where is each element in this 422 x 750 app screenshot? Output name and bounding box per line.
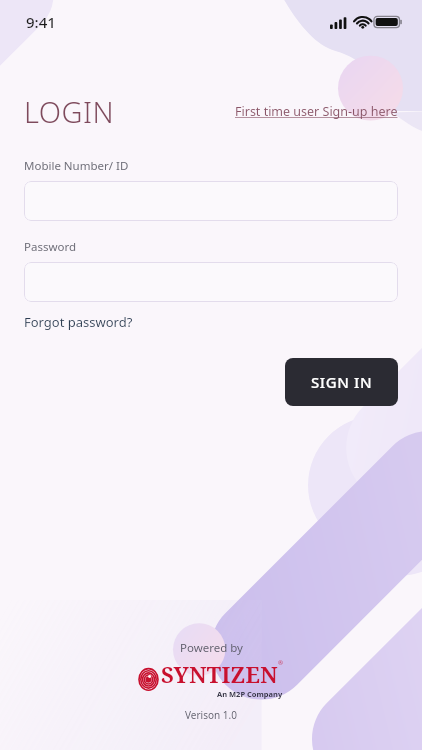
staticText: LOGIN — [24, 92, 115, 131]
staticText: An M2P Company — [217, 689, 283, 699]
button[interactable]: Forgot password? — [24, 313, 133, 331]
staticText: Forgot password? — [24, 313, 133, 331]
staticText: ® — [278, 659, 283, 667]
button[interactable]: First time user Sign-up here — [235, 103, 398, 120]
staticText: SIGN IN — [311, 372, 373, 392]
staticText: Password — [24, 239, 77, 255]
button[interactable]: SIGN IN — [285, 358, 398, 406]
button[interactable] — [24, 181, 398, 221]
staticText: 9:41 — [26, 12, 56, 32]
staticText: SYNTIZEN — [161, 659, 278, 689]
staticText: Powered by — [180, 640, 243, 656]
staticText: First time user Sign-up here — [235, 103, 398, 120]
staticText: Mobile Number/ ID — [24, 158, 129, 174]
button[interactable] — [24, 262, 398, 302]
staticText: Verison 1.0 — [185, 708, 237, 722]
